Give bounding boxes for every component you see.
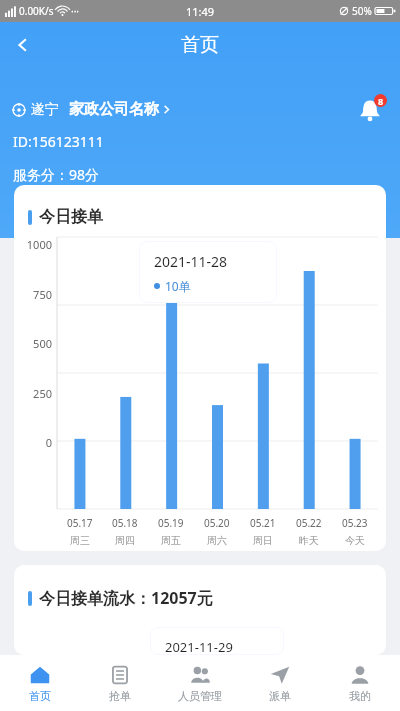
staticText: 10单 — [165, 278, 191, 294]
staticText: 05.21 — [250, 516, 276, 530]
staticText: 05.19 — [158, 516, 184, 530]
button[interactable]: Notifications — [352, 92, 388, 128]
staticText: 周五 — [161, 534, 181, 547]
button[interactable]: 我的 — [320, 655, 400, 711]
staticText: 05.20 — [204, 516, 230, 530]
staticText: 周六 — [207, 534, 227, 547]
staticText: 昨天 — [299, 534, 319, 547]
staticText: 首页 — [181, 33, 219, 57]
staticText: 750 — [14, 287, 52, 302]
staticText: 11:49 — [186, 4, 215, 19]
staticText: 抢单 — [109, 689, 131, 703]
staticText: 500 — [14, 336, 52, 351]
staticText: 今日接单流水：12057元 — [39, 587, 213, 609]
staticText: 周四 — [115, 534, 135, 547]
staticText: 遂宁 — [31, 101, 59, 119]
staticText: 05.17 — [67, 516, 93, 530]
button[interactable]: 抢单 — [80, 655, 160, 711]
staticText: 今天 — [345, 534, 365, 547]
staticText: 05.23 — [342, 516, 368, 530]
staticText: 50% — [352, 4, 372, 18]
staticText: 首页 — [29, 689, 51, 703]
staticText: 0 — [14, 435, 52, 450]
staticText: 今日接单 — [39, 207, 103, 227]
staticText: 周三 — [70, 534, 90, 547]
staticText: 派单 — [269, 689, 291, 703]
staticText: 我的 — [349, 689, 371, 703]
staticText: ID:156123111 — [13, 132, 104, 151]
button[interactable]: 遂宁 — [12, 100, 172, 119]
staticText: 服务分：98分 — [13, 165, 100, 184]
button[interactable]: 人员管理 — [160, 655, 240, 711]
staticText: 8 — [378, 95, 384, 107]
staticText: 周日 — [253, 534, 273, 547]
staticText: 05.18 — [112, 516, 138, 530]
staticText: 0.00K/s — [19, 4, 54, 18]
button[interactable]: 首页 — [0, 655, 80, 711]
staticText: 2021-11-29 — [165, 638, 233, 654]
staticText: 05.22 — [296, 516, 322, 530]
staticText: 250 — [14, 386, 52, 401]
staticText: 家政公司名称 — [69, 100, 159, 119]
staticText: 人员管理 — [178, 689, 222, 703]
staticText: ··· — [71, 4, 80, 18]
button[interactable]: Back — [0, 22, 46, 68]
button[interactable]: 派单 — [240, 655, 320, 711]
staticText: 2021-11-28 — [154, 252, 228, 271]
staticText: 1000 — [14, 237, 52, 252]
